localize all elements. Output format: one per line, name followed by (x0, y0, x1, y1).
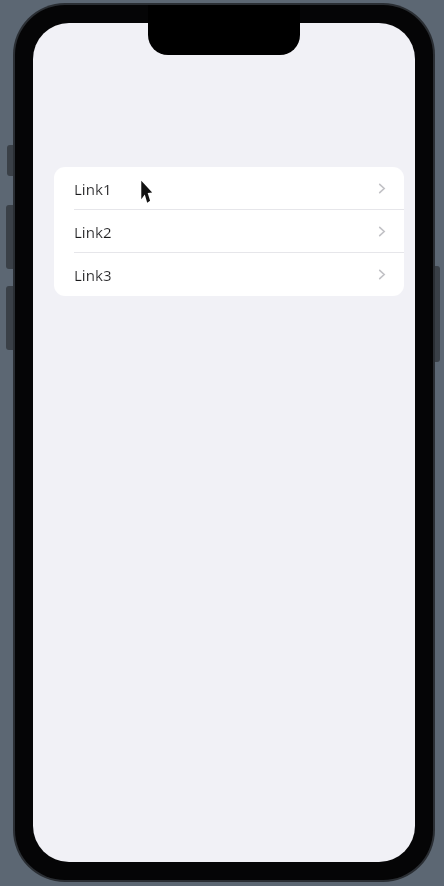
other: Open Link2 (377, 224, 386, 239)
button[interactable]: Link1 (54, 167, 404, 210)
button[interactable]: Link2 (54, 210, 404, 253)
staticText: Link2 (74, 222, 377, 242)
button[interactable]: Link3 (54, 253, 404, 296)
other: Open Link1 (377, 181, 386, 196)
other: Open Link3 (377, 267, 386, 282)
staticText: Link3 (74, 265, 377, 285)
staticText: Link1 (74, 179, 377, 199)
